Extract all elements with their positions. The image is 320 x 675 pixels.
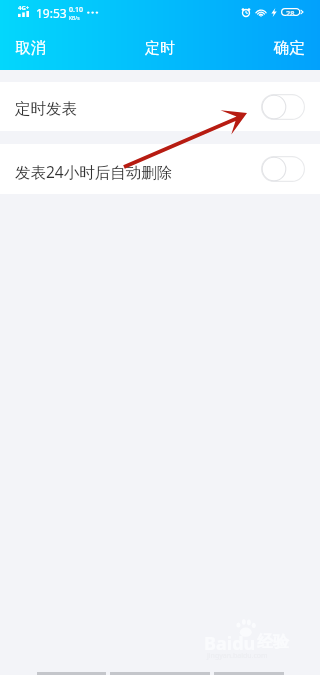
button[interactable]: 取消 (0, 26, 62, 70)
staticText: 发表24小时后自动删除 (15, 161, 173, 182)
staticText: 28 (286, 8, 295, 16)
button[interactable]: 发表24小时后自动删除 (0, 144, 320, 194)
staticText: Baidu (204, 631, 256, 656)
staticText: KB/s (69, 15, 80, 22)
staticText: 经验 (257, 632, 289, 652)
staticText: 19:53 (36, 5, 67, 21)
button[interactable]: Toggle switch, off (261, 94, 305, 120)
other: Battery 28 percent (281, 8, 304, 16)
staticText: 4G+ (18, 4, 30, 12)
button[interactable]: 定时发表 (0, 82, 320, 131)
button[interactable]: 确定 (258, 26, 320, 70)
staticText: 定时发表 (15, 99, 77, 119)
staticText: 定时 (145, 39, 175, 58)
other: Wi-Fi (255, 8, 267, 17)
staticText: 0.10 (69, 5, 83, 15)
staticText: 取消 (15, 38, 46, 58)
other: Charging (271, 8, 277, 17)
staticText: 确定 (274, 38, 305, 58)
other: Alarm (241, 7, 251, 17)
button[interactable]: Toggle switch, off (261, 156, 305, 182)
